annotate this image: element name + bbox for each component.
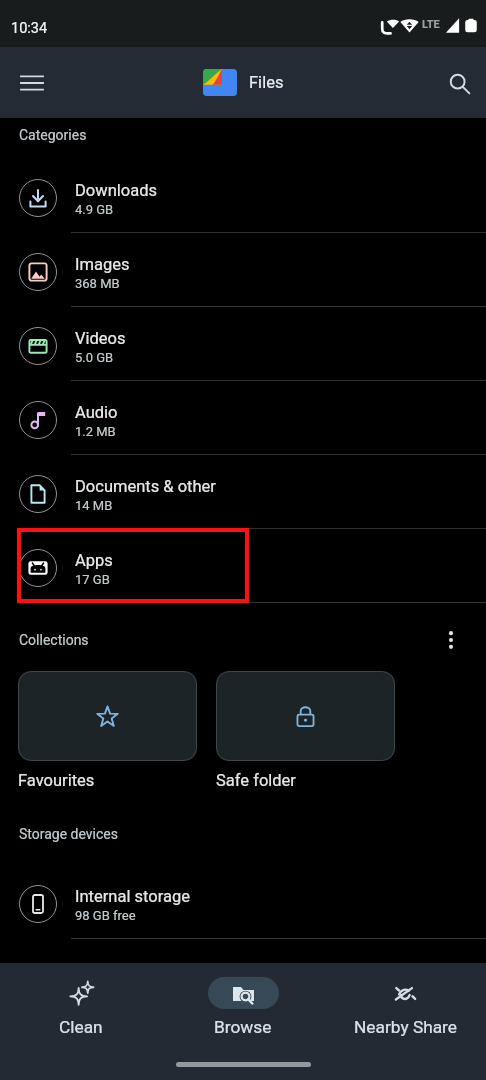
staticText: 98 GB free (75, 908, 136, 923)
staticText: 368 MB (75, 276, 120, 291)
staticText: Collections (19, 632, 89, 648)
button[interactable]: More options (433, 622, 469, 658)
staticText: 14 MB (75, 498, 113, 513)
button[interactable]: Apps (0, 529, 486, 603)
staticText: Documents & other (75, 477, 216, 496)
button[interactable]: Documents & other (0, 455, 486, 529)
button[interactable]: Nearby Share (324, 977, 486, 1037)
staticText: 10:34 (11, 20, 48, 37)
button[interactable] (216, 671, 395, 761)
staticText: 5.0 GB (75, 350, 114, 365)
staticText: Favourites (18, 771, 95, 790)
button[interactable]: Browse (162, 977, 324, 1037)
staticText: Images (75, 255, 130, 274)
staticText: Audio (75, 403, 118, 422)
button[interactable] (18, 671, 197, 761)
staticText: LTE (422, 18, 440, 31)
staticText: Internal storage (75, 887, 190, 906)
staticText: Categories (19, 127, 87, 143)
staticText: 4.9 GB (75, 202, 114, 217)
staticText: Files (249, 73, 284, 92)
staticText: 17 GB (75, 572, 110, 587)
button[interactable]: Audio (0, 381, 486, 455)
staticText: Browse (214, 1017, 272, 1037)
staticText: 1.2 MB (75, 424, 116, 439)
staticText: Downloads (75, 181, 157, 200)
button[interactable]: Downloads (0, 159, 486, 233)
button[interactable]: Clean (0, 977, 162, 1037)
button[interactable]: Videos (0, 307, 486, 381)
button[interactable]: Open navigation menu (8, 59, 56, 107)
staticText: Safe folder (216, 771, 296, 790)
staticText: Nearby Share (354, 1017, 457, 1037)
staticText: Videos (75, 329, 126, 348)
staticText: Apps (75, 551, 113, 570)
button[interactable]: Internal storage (0, 865, 486, 939)
button[interactable]: Search (435, 59, 483, 107)
staticText: Storage devices (19, 826, 118, 842)
button[interactable]: Images (0, 233, 486, 307)
staticText: Clean (59, 1017, 103, 1037)
